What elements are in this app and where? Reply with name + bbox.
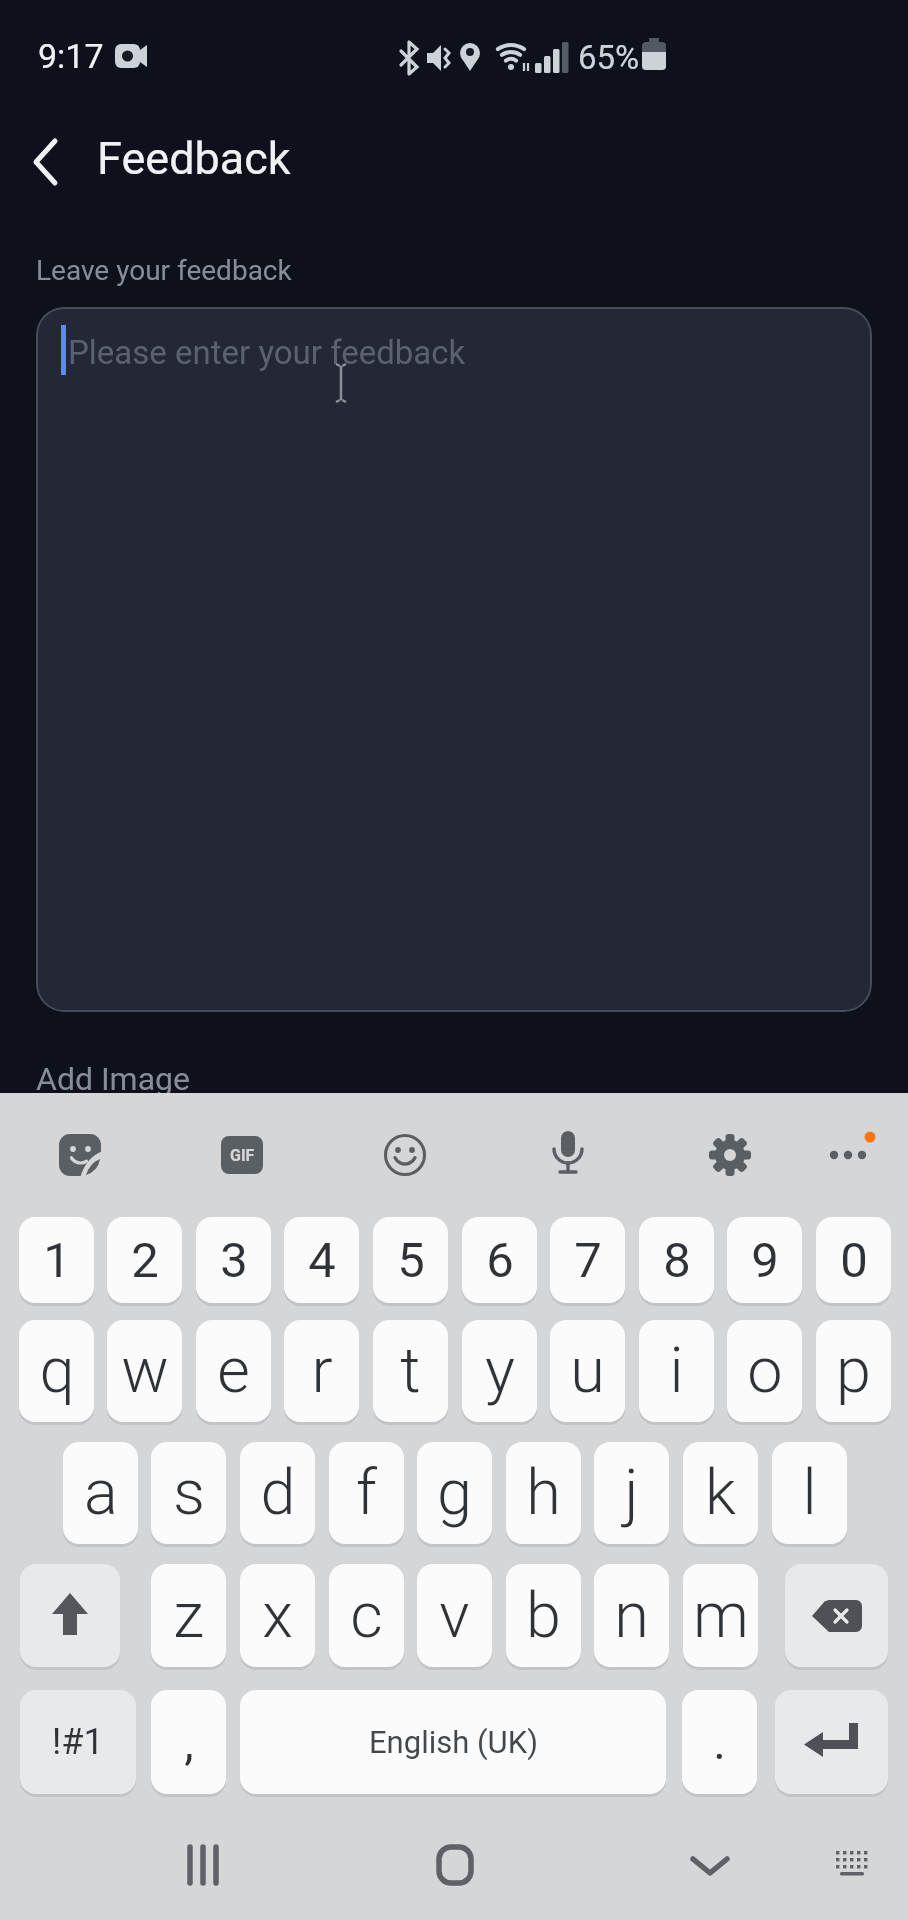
button[interactable]: g	[417, 1442, 492, 1544]
staticText: 9:17	[38, 36, 104, 76]
button[interactable]: k	[683, 1442, 758, 1544]
button[interactable]: r	[284, 1320, 359, 1422]
button[interactable]: d	[240, 1442, 315, 1544]
staticText: c	[350, 1579, 383, 1653]
button[interactable]: 3	[196, 1217, 271, 1303]
button[interactable]	[830, 1845, 874, 1885]
button[interactable]: s	[151, 1442, 226, 1544]
button[interactable]: 4	[284, 1217, 359, 1303]
button[interactable]	[20, 136, 72, 188]
staticText: y	[485, 1334, 515, 1408]
button[interactable]: q	[19, 1320, 94, 1422]
button[interactable]	[785, 1564, 888, 1667]
staticText: t	[400, 1334, 421, 1408]
button[interactable]	[430, 1843, 480, 1887]
staticText: ,	[184, 1714, 194, 1770]
staticText: b	[526, 1579, 561, 1653]
staticText: j	[624, 1456, 639, 1530]
staticText: 1	[43, 1232, 71, 1289]
staticText: h	[526, 1456, 561, 1530]
staticText: 2	[131, 1232, 159, 1289]
staticText: 4	[308, 1232, 336, 1289]
button[interactable]: ,	[151, 1690, 226, 1794]
staticText: x	[262, 1579, 293, 1653]
staticText: n	[614, 1579, 649, 1653]
button[interactable]: Please enter your feedback	[36, 307, 872, 1012]
button[interactable]: 1	[19, 1217, 94, 1303]
button[interactable]: 0	[816, 1217, 891, 1303]
staticText: Add Image	[36, 1060, 191, 1098]
staticText: u	[570, 1334, 605, 1408]
staticText: k	[705, 1456, 736, 1530]
button[interactable]	[685, 1843, 735, 1887]
staticText: q	[39, 1334, 75, 1408]
button[interactable]	[547, 1129, 589, 1181]
staticText: m	[693, 1579, 749, 1653]
button[interactable]: j	[594, 1442, 669, 1544]
staticText: g	[437, 1456, 472, 1530]
button[interactable]	[382, 1132, 428, 1178]
button[interactable]: English (UK)	[240, 1690, 666, 1794]
button[interactable]: i	[639, 1320, 714, 1422]
button[interactable]	[57, 1132, 103, 1178]
button[interactable]: y	[462, 1320, 537, 1422]
staticText: i	[669, 1334, 684, 1408]
button[interactable]: .	[682, 1690, 757, 1794]
staticText: o	[747, 1334, 783, 1408]
button[interactable]: 6	[462, 1217, 537, 1303]
button[interactable]: c	[329, 1564, 404, 1667]
button[interactable]: !#1	[20, 1690, 136, 1794]
staticText: l	[802, 1456, 817, 1530]
staticText: d	[260, 1456, 296, 1530]
staticText: GIF	[230, 1146, 255, 1165]
staticText: f	[356, 1456, 377, 1530]
button[interactable]: w	[107, 1320, 182, 1422]
button[interactable]: n	[594, 1564, 669, 1667]
staticText: Feedback	[97, 132, 291, 185]
button[interactable]: v	[417, 1564, 492, 1667]
staticText: r	[311, 1334, 333, 1408]
button[interactable]: 2	[107, 1217, 182, 1303]
button[interactable]: b	[506, 1564, 581, 1667]
button[interactable]: p	[816, 1320, 891, 1422]
button[interactable]	[178, 1843, 228, 1887]
button[interactable]	[775, 1690, 888, 1794]
staticText: Please enter your feedback	[68, 333, 466, 372]
button[interactable]	[20, 1564, 120, 1667]
staticText: 65%	[578, 38, 640, 77]
staticText: .	[713, 1714, 726, 1770]
button[interactable]: x	[240, 1564, 315, 1667]
button[interactable]: o	[727, 1320, 802, 1422]
staticText: 3	[220, 1232, 248, 1289]
button[interactable]: l	[772, 1442, 847, 1544]
staticText: e	[217, 1334, 250, 1408]
staticText: 6	[486, 1232, 514, 1289]
button[interactable]: f	[329, 1442, 404, 1544]
button[interactable]: u	[550, 1320, 625, 1422]
button[interactable]: t	[373, 1320, 448, 1422]
staticText: 8	[663, 1232, 691, 1289]
button[interactable]: 5	[373, 1217, 448, 1303]
staticText: p	[836, 1334, 871, 1408]
staticText: 9	[751, 1232, 779, 1289]
button[interactable]: GIF	[221, 1136, 263, 1174]
staticText: w	[121, 1334, 169, 1408]
button[interactable]: 8	[639, 1217, 714, 1303]
staticText: a	[84, 1456, 118, 1530]
button[interactable]: e	[196, 1320, 271, 1422]
staticText: 7	[574, 1232, 602, 1289]
button[interactable]: z	[151, 1564, 226, 1667]
button[interactable]: 9	[727, 1217, 802, 1303]
staticText: Leave your feedback	[36, 254, 292, 287]
button[interactable]: 7	[550, 1217, 625, 1303]
staticText: z	[173, 1579, 204, 1653]
staticText: !#1	[52, 1721, 104, 1763]
staticText: v	[439, 1579, 470, 1653]
button[interactable]	[706, 1131, 754, 1179]
button[interactable]: h	[506, 1442, 581, 1544]
staticText: 5	[397, 1232, 425, 1289]
button[interactable]	[820, 1129, 880, 1179]
staticText: 0	[840, 1232, 868, 1289]
button[interactable]: m	[683, 1564, 758, 1667]
button[interactable]: a	[63, 1442, 138, 1544]
